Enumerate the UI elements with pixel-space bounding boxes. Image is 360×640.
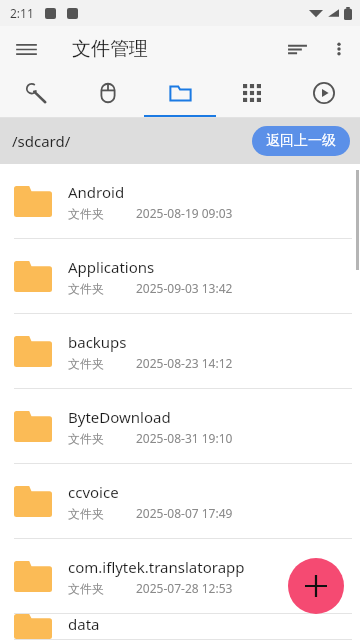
button[interactable]: Apps: [216, 72, 288, 118]
button[interactable]: Tools: [0, 72, 72, 118]
staticText: 2:11: [10, 5, 34, 21]
button[interactable]: 返回上一级: [252, 126, 350, 156]
button[interactable]: Mouse: [72, 72, 144, 118]
staticText: 文件夹: [68, 581, 104, 596]
button[interactable]: Add: [288, 558, 344, 614]
button[interactable]: Menu: [6, 29, 46, 69]
staticText: 文件夹: [68, 431, 104, 446]
staticText: 2025-08-19 09:03: [136, 205, 233, 221]
button[interactable]: Sort: [276, 28, 318, 70]
button[interactable]: ByteDownload: [0, 389, 360, 464]
staticText: 文件管理: [72, 37, 148, 61]
staticText: 2025-08-07 17:49: [136, 505, 233, 521]
staticText: data: [68, 614, 100, 634]
staticText: 文件夹: [68, 281, 104, 296]
staticText: 返回上一级: [266, 132, 336, 150]
button[interactable]: backups: [0, 314, 360, 389]
staticText: 2025-08-31 19:10: [136, 430, 233, 446]
staticText: 文件夹: [68, 356, 104, 371]
staticText: 2025-09-03 13:42: [136, 280, 233, 296]
staticText: Android: [68, 182, 125, 202]
staticText: backups: [68, 332, 127, 352]
staticText: 2025-08-23 14:12: [136, 355, 233, 371]
button[interactable]: Android: [0, 164, 360, 239]
button[interactable]: com.iflytek.translatorapp: [0, 539, 360, 614]
staticText: /sdcard/: [12, 131, 71, 151]
staticText: Applications: [68, 257, 155, 277]
button[interactable]: ccvoice: [0, 464, 360, 539]
button[interactable]: Applications: [0, 239, 360, 314]
staticText: 2025-07-28 12:53: [136, 580, 233, 596]
staticText: ByteDownload: [68, 407, 171, 427]
button[interactable]: Media: [288, 72, 360, 118]
button[interactable]: data: [0, 614, 360, 640]
staticText: ccvoice: [68, 482, 119, 502]
staticText: 文件夹: [68, 206, 104, 221]
button[interactable]: More options: [318, 28, 360, 70]
button[interactable]: Files: [144, 72, 216, 118]
staticText: 文件夹: [68, 506, 104, 521]
staticText: com.iflytek.translatorapp: [68, 557, 245, 577]
